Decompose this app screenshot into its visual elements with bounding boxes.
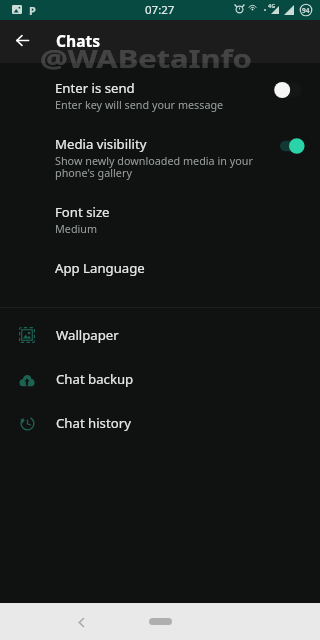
button[interactable]: Back — [68, 609, 94, 635]
button[interactable]: Media visibility — [0, 135, 320, 180]
staticText: Media visibility — [55, 135, 147, 153]
button[interactable]: Chat history — [0, 401, 320, 445]
staticText: Chat backup — [56, 370, 134, 388]
staticText: @WABetaInfo — [40, 41, 252, 75]
staticText: Enter key will send your message — [55, 97, 224, 112]
button[interactable]: Enter is send off — [274, 81, 304, 99]
staticText: Show newly downloaded media in your phon… — [55, 153, 253, 180]
button[interactable]: Back — [0, 19, 44, 62]
staticText: Chat history — [56, 414, 131, 432]
button[interactable]: Font size — [0, 203, 320, 236]
button[interactable]: Home — [149, 618, 172, 625]
button[interactable]: Wallpaper — [0, 313, 320, 357]
staticText: 94 — [302, 6, 310, 15]
button[interactable]: App Language — [0, 259, 320, 277]
staticText: Font size — [55, 203, 110, 221]
staticText: P — [29, 3, 36, 16]
button[interactable]: Enter is send — [0, 79, 320, 112]
button[interactable]: Media visibility on — [274, 137, 304, 155]
staticText: Chats — [56, 30, 101, 51]
staticText: Medium — [55, 221, 98, 236]
staticText: App Language — [55, 259, 145, 277]
staticText: Enter is send — [55, 79, 135, 97]
staticText: 4G — [268, 2, 276, 9]
staticText: Wallpaper — [56, 326, 119, 344]
button[interactable]: Chat backup — [0, 357, 320, 401]
staticText: 07:27 — [145, 2, 175, 18]
